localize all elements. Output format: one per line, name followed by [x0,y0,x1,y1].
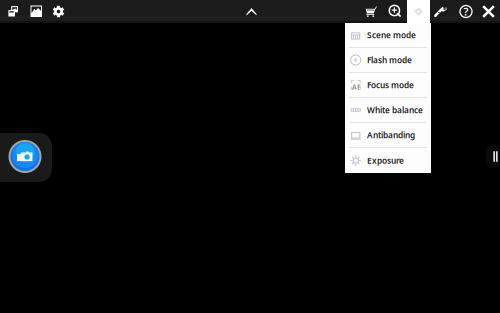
button[interactable]: Tools [429,0,452,23]
staticText: Focus mode [367,79,414,91]
button[interactable]: Settings [47,0,70,23]
button[interactable]: Switch camera [2,0,25,23]
button[interactable]: Store [359,0,382,23]
staticText: Flash mode [367,54,412,66]
button[interactable]: Help [454,0,477,23]
button[interactable]: Scene mode [345,23,431,48]
button[interactable]: White balance [345,98,431,123]
button[interactable]: Flash mode [345,48,431,73]
button[interactable]: Gallery [25,0,48,23]
button[interactable]: Exposure [345,148,431,173]
staticText: Exposure [367,155,404,166]
staticText: Antibanding [367,129,415,141]
button[interactable]: More options [407,0,430,23]
staticText: AF [352,82,361,91]
button[interactable]: Close [477,0,500,23]
button[interactable]: Shutter [8,139,42,173]
button[interactable]: Collapse toolbar [240,0,263,23]
button[interactable]: Zoom in [384,0,407,23]
staticText: Scene mode [367,29,416,41]
button[interactable]: Antibanding [345,123,431,148]
staticText: White balance [367,104,423,116]
staticText: ? [463,4,468,19]
button[interactable]: Open side panel [486,145,499,168]
button[interactable]: AF [345,73,431,98]
